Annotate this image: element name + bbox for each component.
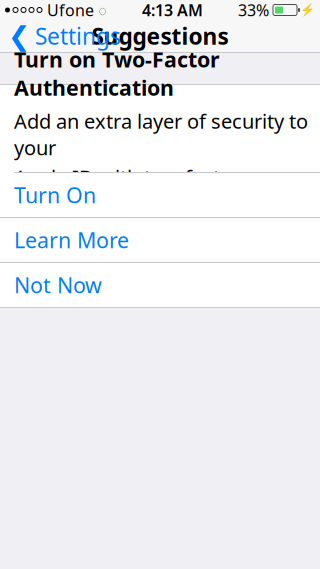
staticText: Settings [35,21,121,51]
staticText: ◌ [98,0,107,20]
button[interactable]: Learn More [0,218,320,263]
staticText: 4:13 AM [142,0,203,21]
staticText: 33% [238,0,269,21]
staticText: Add an extra layer of security to your [14,108,308,161]
staticText: Suggestions [91,21,228,51]
staticText: Turn on Two-Factor Authentication [14,45,220,102]
staticText: ❮ [8,21,30,51]
staticText: Ufone [47,0,94,21]
staticText: Learn More [14,226,129,254]
staticText: Not Now [14,271,102,299]
staticText: Turn On [14,181,96,209]
staticText: ⚡ [300,3,315,17]
button[interactable]: Turn On [0,173,320,218]
button[interactable]: ❮ [0,15,121,57]
staticText: Apple ID with two-factor authentication. [14,164,240,217]
button[interactable]: Not Now [0,263,320,308]
